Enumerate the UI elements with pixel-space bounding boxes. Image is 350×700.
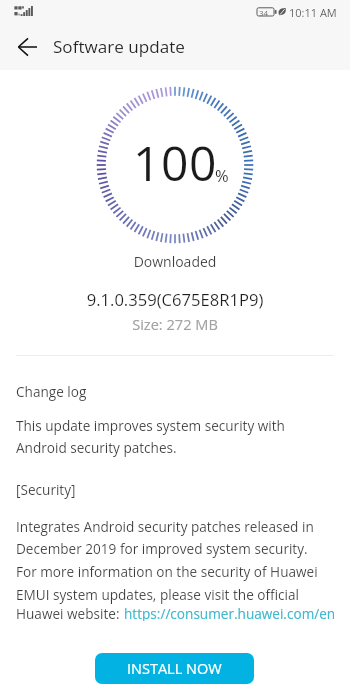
staticText: Downloaded [0, 252, 350, 271]
staticText: 9.1.0.359(C675E8R1P9) [0, 288, 350, 311]
staticText: Change log [16, 382, 87, 401]
staticText: 100 [133, 130, 218, 195]
staticText: 10:11 AM [289, 5, 337, 20]
button[interactable]: INSTALL NOW [95, 653, 254, 684]
staticText: Integrates Android security patches rele… [16, 517, 318, 604]
staticText: This update improves system security wit… [16, 416, 285, 457]
staticText: 34 [259, 7, 269, 18]
staticText: Software update [53, 35, 185, 58]
staticText: Size: 272 MB [0, 314, 350, 334]
staticText: INSTALL NOW [127, 659, 222, 679]
staticText: https://consumer.huawei.com/en [124, 604, 336, 623]
button[interactable]: Back [11, 31, 43, 63]
staticText: [Security] [16, 480, 76, 499]
staticText: % [215, 164, 229, 186]
staticText: Huawei website: [16, 604, 124, 623]
